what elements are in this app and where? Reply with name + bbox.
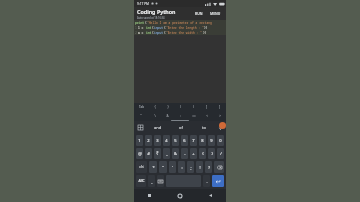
button[interactable]: ₹: [154, 148, 161, 159]
staticText: {: [154, 105, 156, 109]
button[interactable]: :: [178, 161, 185, 173]
staticText: >: [219, 114, 221, 118]
staticText: &: [174, 151, 177, 156]
staticText: *: [152, 165, 155, 170]
button[interactable]: =\<: [136, 161, 147, 173]
staticText: ₹: [156, 151, 159, 156]
button[interactable]: 9: [208, 135, 215, 146]
button[interactable]: (: [199, 148, 206, 159]
button[interactable]: Tab: [134, 103, 148, 111]
staticText: ": [162, 165, 164, 170]
button[interactable]: 4: [163, 135, 170, 146]
button[interactable]: Recents: [134, 189, 164, 202]
button[interactable]: Switch keyboard: [134, 121, 146, 133]
button[interactable]: *: [149, 161, 157, 173]
button[interactable]: and: [146, 121, 169, 133]
button[interactable]: Voice input: [215, 121, 226, 133]
button[interactable]: [: [200, 103, 213, 111]
button[interactable]: (: [174, 103, 187, 111]
button[interactable]: .: [203, 175, 210, 187]
button[interactable]: ): [187, 103, 200, 111]
staticText: (: [152, 31, 154, 35]
button[interactable]: <: [200, 111, 213, 120]
button[interactable]: Backspace: [214, 161, 224, 173]
staticText: Auto saved at 18:16:34: [137, 16, 165, 20]
button[interactable]: Emoji: [157, 175, 164, 187]
staticText: RUN: [195, 11, 203, 16]
button[interactable]: ): [208, 148, 215, 159]
button[interactable]: RUN: [193, 10, 205, 17]
staticText: (: [145, 21, 147, 25]
staticText: !: [199, 165, 201, 170]
button[interactable]: ?: [205, 161, 212, 173]
staticText: of: [179, 125, 183, 130]
button[interactable]: #: [145, 148, 152, 159]
button[interactable]: Back: [195, 189, 226, 202]
button[interactable]: /: [217, 148, 224, 159]
button[interactable]: ': [169, 161, 176, 173]
staticText: 4: [165, 138, 168, 143]
button[interactable]: 6: [181, 135, 188, 146]
button[interactable]: >: [213, 111, 226, 120]
staticText: MENU: [210, 11, 221, 16]
button[interactable]: -: [181, 148, 188, 159]
staticText: :: [181, 165, 183, 170]
staticText: input: [154, 31, 164, 35]
button[interactable]: ,: [148, 175, 155, 187]
button[interactable]: ==: [187, 111, 200, 120]
staticText: [: [206, 105, 207, 109]
staticText: ): [211, 151, 213, 156]
button[interactable]: to: [192, 121, 215, 133]
staticText: ==: [192, 114, 196, 118]
staticText: \: [154, 114, 156, 118]
staticText: (: [202, 151, 204, 156]
staticText: 7: [192, 138, 195, 143]
button[interactable]: ABC: [136, 175, 146, 187]
button[interactable]: 0: [217, 135, 224, 146]
button[interactable]: 2: [145, 135, 152, 146]
button[interactable]: of: [169, 121, 192, 133]
button[interactable]: +: [190, 148, 197, 159]
staticText: Tab: [139, 105, 144, 109]
staticText: ): [193, 105, 194, 109]
button[interactable]: :: [174, 111, 187, 120]
staticText: =\<: [139, 165, 144, 169]
button[interactable]: ;: [187, 161, 194, 173]
staticText: 9: [210, 138, 213, 143]
button[interactable]: Enter: [212, 175, 224, 187]
staticText: print: [135, 21, 145, 25]
staticText: 8: [201, 138, 204, 143]
staticText: 0: [219, 138, 222, 143]
button[interactable]: }: [161, 103, 174, 111]
button[interactable]: 7: [190, 135, 197, 146]
button[interactable]: ": [159, 161, 167, 173]
staticText: 1: [135, 26, 137, 30]
button[interactable]: 5: [172, 135, 179, 146]
button[interactable]: &: [172, 148, 179, 159]
button[interactable]: !: [196, 161, 203, 173]
button[interactable]: &: [161, 111, 174, 120]
staticText: &: [166, 114, 169, 118]
staticText: 5: [174, 138, 177, 143]
button[interactable]: 1: [136, 135, 143, 146]
staticText: 2: [147, 138, 150, 143]
button[interactable]: ]: [213, 103, 226, 111]
staticText: <: [206, 114, 208, 118]
button[interactable]: \: [148, 111, 161, 120]
staticText: }: [167, 105, 169, 109]
staticText: ": [140, 114, 142, 118]
button[interactable]: @: [136, 148, 143, 159]
button[interactable]: 3: [154, 135, 161, 146]
button[interactable]: _: [163, 148, 170, 159]
button[interactable]: 8: [199, 135, 206, 146]
staticText: (: [164, 26, 166, 30]
staticText: to: [202, 125, 206, 130]
staticText: Coding Python: [137, 8, 176, 15]
button[interactable]: {: [148, 103, 161, 111]
button[interactable]: Home: [164, 189, 195, 202]
staticText: 2: [135, 31, 137, 35]
button[interactable]: MENU: [208, 10, 223, 17]
staticText: ABC: [138, 179, 145, 183]
button[interactable]: ": [134, 111, 148, 120]
